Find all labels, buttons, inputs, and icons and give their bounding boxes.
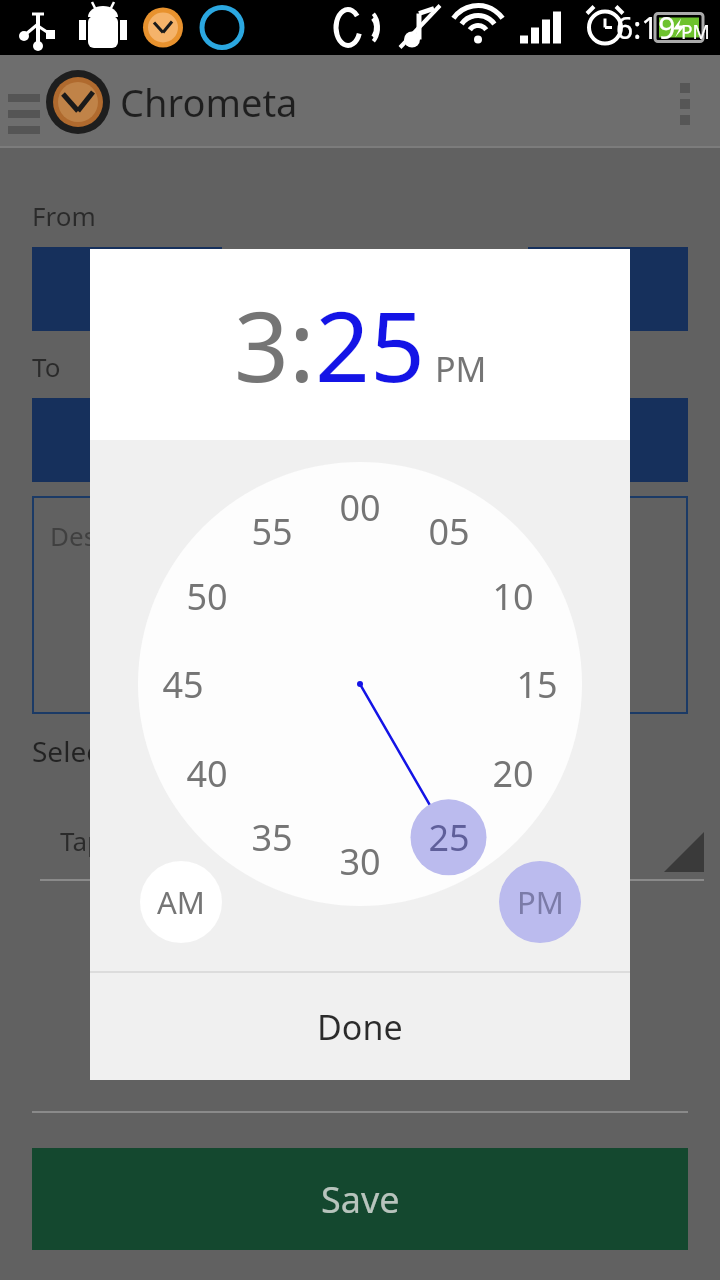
button[interactable]: Save bbox=[32, 1148, 688, 1250]
button[interactable]: Menu bbox=[2, 80, 46, 124]
staticText: 40 bbox=[186, 749, 228, 798]
button[interactable]: 3:25 bbox=[32, 247, 222, 331]
button[interactable]: 15 bbox=[505, 658, 569, 710]
staticText: 20 bbox=[492, 749, 534, 798]
staticText: 30 bbox=[339, 837, 381, 886]
button[interactable]: 20 bbox=[481, 747, 545, 799]
staticText: 15 bbox=[516, 660, 558, 709]
button[interactable]: 00 bbox=[328, 481, 392, 533]
button[interactable]: 55 bbox=[240, 505, 304, 557]
staticText: From bbox=[32, 198, 96, 233]
other: Chrometa logo bbox=[46, 70, 110, 134]
button[interactable]: 50 bbox=[175, 570, 239, 622]
button[interactable]: 30 bbox=[328, 835, 392, 887]
button[interactable]: 3:25 bbox=[32, 398, 222, 482]
staticText: Chrometa bbox=[120, 76, 298, 128]
staticText: 45 bbox=[162, 660, 204, 709]
staticText: AM bbox=[157, 881, 205, 923]
button[interactable]: 10 bbox=[481, 570, 545, 622]
button[interactable]: AM bbox=[140, 861, 222, 943]
button[interactable]: More options bbox=[650, 67, 720, 137]
staticText: Description bbox=[50, 518, 190, 553]
button[interactable]: 05 bbox=[417, 505, 481, 557]
staticText: Select a project bbox=[32, 732, 232, 770]
staticText: To bbox=[32, 349, 61, 384]
staticText: 00 bbox=[339, 483, 381, 532]
button[interactable]: 35 bbox=[240, 811, 304, 863]
button[interactable]: Description bbox=[32, 496, 688, 714]
staticText: 3:25 bbox=[97, 420, 157, 461]
staticText: 25 bbox=[428, 813, 470, 862]
staticText: Save bbox=[321, 1175, 400, 1224]
button[interactable]: 45 bbox=[151, 658, 215, 710]
button[interactable]: PM bbox=[528, 398, 688, 482]
staticText: 3 bbox=[234, 279, 289, 410]
staticText: 35 bbox=[251, 813, 293, 862]
staticText: PM bbox=[435, 346, 487, 392]
button[interactable]: Tap to select bbox=[0, 800, 720, 880]
staticText: PM bbox=[585, 269, 631, 310]
button[interactable]: 3 bbox=[234, 279, 289, 410]
button[interactable]: 25 bbox=[315, 279, 425, 410]
staticText: 05 bbox=[428, 507, 470, 556]
staticText: : bbox=[289, 279, 315, 410]
button[interactable]: Done bbox=[90, 973, 630, 1080]
button[interactable]: PM bbox=[499, 861, 581, 943]
button[interactable]: 40 bbox=[175, 747, 239, 799]
button[interactable]: 25 bbox=[417, 811, 481, 863]
staticText: 55 bbox=[251, 507, 293, 556]
staticText: PM bbox=[681, 19, 710, 45]
staticText: PM bbox=[585, 420, 631, 461]
staticText: 10 bbox=[492, 572, 534, 621]
staticText: 25 bbox=[315, 279, 425, 410]
button[interactable]: PM bbox=[528, 247, 688, 331]
staticText: 6:19 bbox=[616, 7, 676, 48]
staticText: PM bbox=[517, 881, 564, 923]
staticText: Tap to select bbox=[60, 823, 212, 858]
staticText: 50 bbox=[186, 572, 228, 621]
staticText: Done bbox=[317, 1004, 403, 1050]
